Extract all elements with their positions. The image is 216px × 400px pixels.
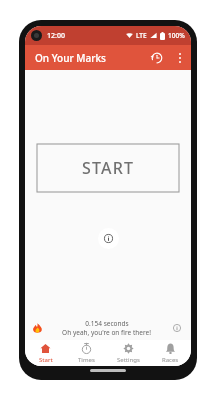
staticText: Settings — [117, 356, 140, 364]
button[interactable]: Settings — [107, 340, 149, 366]
button[interactable]: About — [170, 321, 184, 335]
staticText: START — [82, 157, 135, 179]
staticText: 0.154 seconds — [85, 319, 129, 328]
staticText: Races — [162, 356, 179, 364]
button[interactable]: START — [37, 144, 179, 192]
staticText: LTE — [136, 31, 147, 40]
button[interactable]: Times — [66, 340, 107, 366]
button[interactable]: Races — [149, 340, 191, 366]
staticText: On Your Marks — [35, 51, 106, 65]
staticText: Start — [39, 356, 53, 364]
staticText: Oh yeah, you're on fire there! — [62, 328, 151, 337]
button[interactable]: Info — [98, 228, 119, 249]
staticText: 100% — [168, 31, 185, 40]
staticText: Times — [78, 356, 95, 364]
button[interactable]: Start — [25, 340, 66, 366]
staticText: 12:00 — [47, 31, 65, 41]
button[interactable]: History — [145, 46, 169, 70]
button[interactable]: More options — [169, 47, 191, 69]
